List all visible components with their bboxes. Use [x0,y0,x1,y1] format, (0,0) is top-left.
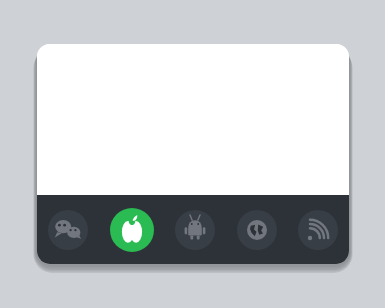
button[interactable]: Android [175,210,215,250]
button[interactable]: Apple [110,208,154,252]
button[interactable]: RSS feed [298,210,338,250]
button[interactable]: Web [237,210,277,250]
button[interactable]: WeChat [48,210,88,250]
